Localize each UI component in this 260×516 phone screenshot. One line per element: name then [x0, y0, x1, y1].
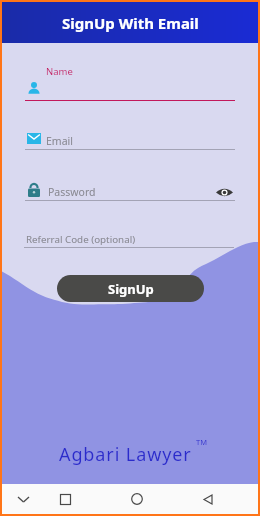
button[interactable]: Back: [187, 484, 229, 514]
staticText: TM: [196, 437, 207, 447]
staticText: SignUp: [108, 280, 154, 298]
button[interactable]: Show password: [215, 183, 233, 201]
staticText: Email: [46, 134, 73, 148]
staticText: Referral Code (optional): [26, 233, 136, 246]
staticText: Password: [48, 185, 96, 199]
staticText: Agbari Lawyer: [59, 442, 192, 467]
button[interactable]: Recents: [44, 484, 86, 514]
button[interactable]: Home: [116, 484, 158, 514]
button[interactable]: SignUp: [57, 275, 204, 302]
staticText: Name: [46, 65, 73, 78]
button[interactable]: Hide keyboard: [2, 484, 44, 514]
staticText: SignUp With Email: [62, 13, 199, 33]
